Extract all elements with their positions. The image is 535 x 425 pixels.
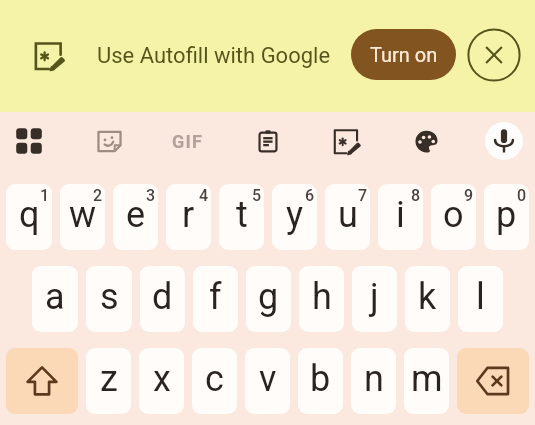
staticText: Use Autofill with Google bbox=[97, 43, 331, 69]
button[interactable]: k bbox=[405, 266, 450, 332]
staticText: GIF bbox=[172, 131, 204, 152]
button[interactable]: d bbox=[140, 266, 185, 332]
staticText: h bbox=[312, 276, 332, 318]
staticText: u bbox=[338, 194, 358, 236]
staticText: 9 bbox=[464, 186, 474, 205]
button[interactable]: y bbox=[272, 184, 317, 250]
button[interactable]: Themes bbox=[400, 115, 452, 167]
button[interactable]: s bbox=[86, 266, 132, 332]
button[interactable]: m bbox=[404, 348, 449, 414]
staticText: k bbox=[418, 276, 437, 318]
button[interactable]: t bbox=[219, 184, 264, 250]
staticText: c bbox=[205, 358, 224, 400]
staticText: n bbox=[364, 358, 384, 400]
button[interactable]: g bbox=[246, 266, 291, 332]
button[interactable]: a bbox=[32, 266, 78, 332]
staticText: 2 bbox=[93, 186, 103, 205]
staticText: 4 bbox=[199, 186, 209, 205]
staticText: o bbox=[443, 194, 464, 236]
button[interactable]: Dismiss bbox=[464, 25, 524, 85]
button[interactable]: i bbox=[378, 184, 423, 250]
staticText: i bbox=[396, 194, 405, 236]
button[interactable]: n bbox=[351, 348, 396, 414]
button[interactable]: Apps bbox=[3, 115, 55, 167]
staticText: x bbox=[153, 358, 171, 400]
staticText: b bbox=[310, 358, 331, 400]
button[interactable]: e bbox=[113, 184, 158, 250]
button[interactable]: Voice input bbox=[480, 115, 532, 167]
staticText: m bbox=[411, 358, 443, 400]
staticText: 7 bbox=[358, 186, 368, 205]
staticText: 8 bbox=[411, 186, 421, 205]
staticText: w bbox=[69, 194, 97, 236]
staticText: Turn on bbox=[370, 43, 438, 66]
staticText: y bbox=[286, 194, 304, 236]
button[interactable]: Shift bbox=[6, 348, 78, 414]
button[interactable]: w bbox=[60, 184, 105, 250]
button[interactable]: b bbox=[298, 348, 343, 414]
button[interactable]: l bbox=[458, 266, 503, 332]
staticText: p bbox=[496, 194, 517, 236]
staticText: j bbox=[370, 276, 379, 318]
button[interactable]: u bbox=[325, 184, 370, 250]
button[interactable]: r bbox=[166, 184, 211, 250]
button[interactable]: o bbox=[431, 184, 476, 250]
button[interactable]: Backspace bbox=[457, 348, 529, 414]
button[interactable]: x bbox=[139, 348, 184, 414]
button[interactable]: Turn on bbox=[351, 29, 456, 80]
staticText: e bbox=[126, 194, 146, 236]
button[interactable]: z bbox=[86, 348, 131, 414]
button[interactable]: c bbox=[192, 348, 237, 414]
button[interactable]: v bbox=[245, 348, 290, 414]
staticText: r bbox=[182, 194, 195, 236]
staticText: 0 bbox=[517, 186, 527, 205]
staticText: a bbox=[45, 276, 65, 318]
staticText: 3 bbox=[146, 186, 156, 205]
staticText: v bbox=[259, 358, 277, 400]
button[interactable]: p bbox=[484, 184, 529, 250]
button[interactable]: Clipboard bbox=[242, 115, 294, 167]
staticText: 5 bbox=[252, 186, 262, 205]
button[interactable]: q bbox=[6, 184, 52, 250]
button[interactable]: Stickers bbox=[83, 115, 135, 167]
staticText: 6 bbox=[305, 186, 315, 205]
button[interactable]: h bbox=[299, 266, 344, 332]
staticText: q bbox=[19, 194, 40, 236]
button[interactable]: GIF bbox=[162, 115, 214, 167]
button[interactable]: f bbox=[193, 266, 238, 332]
staticText: l bbox=[476, 276, 485, 318]
staticText: t bbox=[236, 194, 248, 236]
staticText: s bbox=[100, 276, 119, 318]
staticText: z bbox=[100, 358, 118, 400]
button[interactable]: j bbox=[352, 266, 397, 332]
staticText: 1 bbox=[40, 186, 50, 205]
staticText: f bbox=[209, 276, 222, 318]
button[interactable]: Autofill bbox=[321, 115, 373, 167]
staticText: d bbox=[152, 276, 173, 318]
button[interactable]: Autofill bbox=[22, 29, 76, 83]
staticText: g bbox=[258, 276, 279, 318]
